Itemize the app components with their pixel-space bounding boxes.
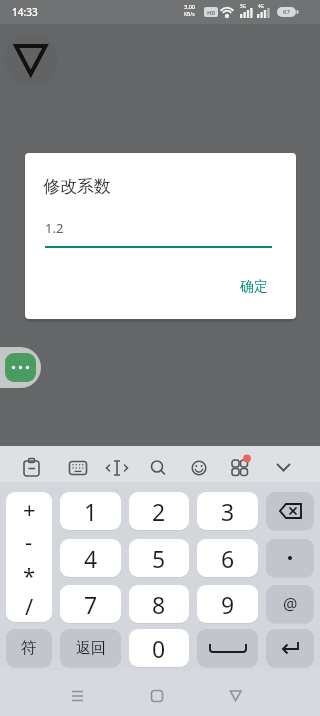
staticText: 3.00: [184, 3, 195, 10]
staticText: -: [25, 526, 33, 556]
staticText: 2: [152, 496, 166, 527]
button[interactable]: [106, 670, 213, 716]
staticText: *: [23, 560, 36, 590]
staticText: 67: [283, 8, 290, 16]
button[interactable]: [182, 446, 228, 482]
button[interactable]: 5: [129, 539, 189, 577]
button[interactable]: [0, 347, 41, 388]
staticText: @: [283, 593, 298, 615]
button[interactable]: 确定: [222, 269, 286, 305]
staticText: 1.2: [45, 219, 64, 237]
staticText: 修改系数: [43, 176, 111, 197]
staticText: 3: [221, 496, 235, 527]
button[interactable]: [0, 446, 45, 482]
button[interactable]: [6, 492, 52, 622]
staticText: 1: [84, 496, 98, 527]
staticText: 4: [84, 543, 98, 574]
button[interactable]: [0, 670, 106, 716]
staticText: /: [25, 591, 34, 621]
button[interactable]: [274, 446, 320, 482]
staticText: 0: [152, 633, 166, 664]
button[interactable]: 符: [6, 629, 52, 667]
staticText: 5: [152, 543, 166, 574]
staticText: 5G: [240, 3, 246, 9]
button[interactable]: 2: [129, 492, 189, 530]
button[interactable]: 3: [197, 492, 258, 530]
staticText: 返回: [76, 639, 106, 658]
staticText: 7: [84, 589, 98, 620]
button[interactable]: @: [266, 585, 314, 623]
staticText: KB/s: [184, 11, 195, 18]
staticText: 8: [152, 589, 166, 620]
button[interactable]: [266, 629, 314, 667]
staticText: 符: [21, 638, 37, 658]
button[interactable]: 1: [60, 492, 121, 530]
button[interactable]: 返回: [60, 629, 121, 667]
staticText: 6: [221, 543, 235, 574]
button[interactable]: 0: [129, 629, 189, 667]
button[interactable]: [45, 446, 90, 482]
button[interactable]: [266, 492, 314, 530]
button[interactable]: 7: [60, 585, 121, 623]
staticText: 确定: [240, 278, 268, 296]
staticText: 4G: [258, 3, 264, 9]
staticText: 14:33: [12, 5, 38, 19]
button[interactable]: 4: [60, 539, 121, 577]
button[interactable]: [266, 539, 314, 577]
button[interactable]: [90, 446, 136, 482]
staticText: HD: [207, 9, 216, 16]
button[interactable]: [136, 446, 182, 482]
button[interactable]: [213, 670, 320, 716]
staticText: +: [23, 494, 36, 524]
staticText: 9: [221, 589, 235, 620]
button[interactable]: [228, 446, 274, 482]
button[interactable]: 8: [129, 585, 189, 623]
button[interactable]: [197, 629, 258, 667]
button[interactable]: 6: [197, 539, 258, 577]
button[interactable]: 9: [197, 585, 258, 623]
